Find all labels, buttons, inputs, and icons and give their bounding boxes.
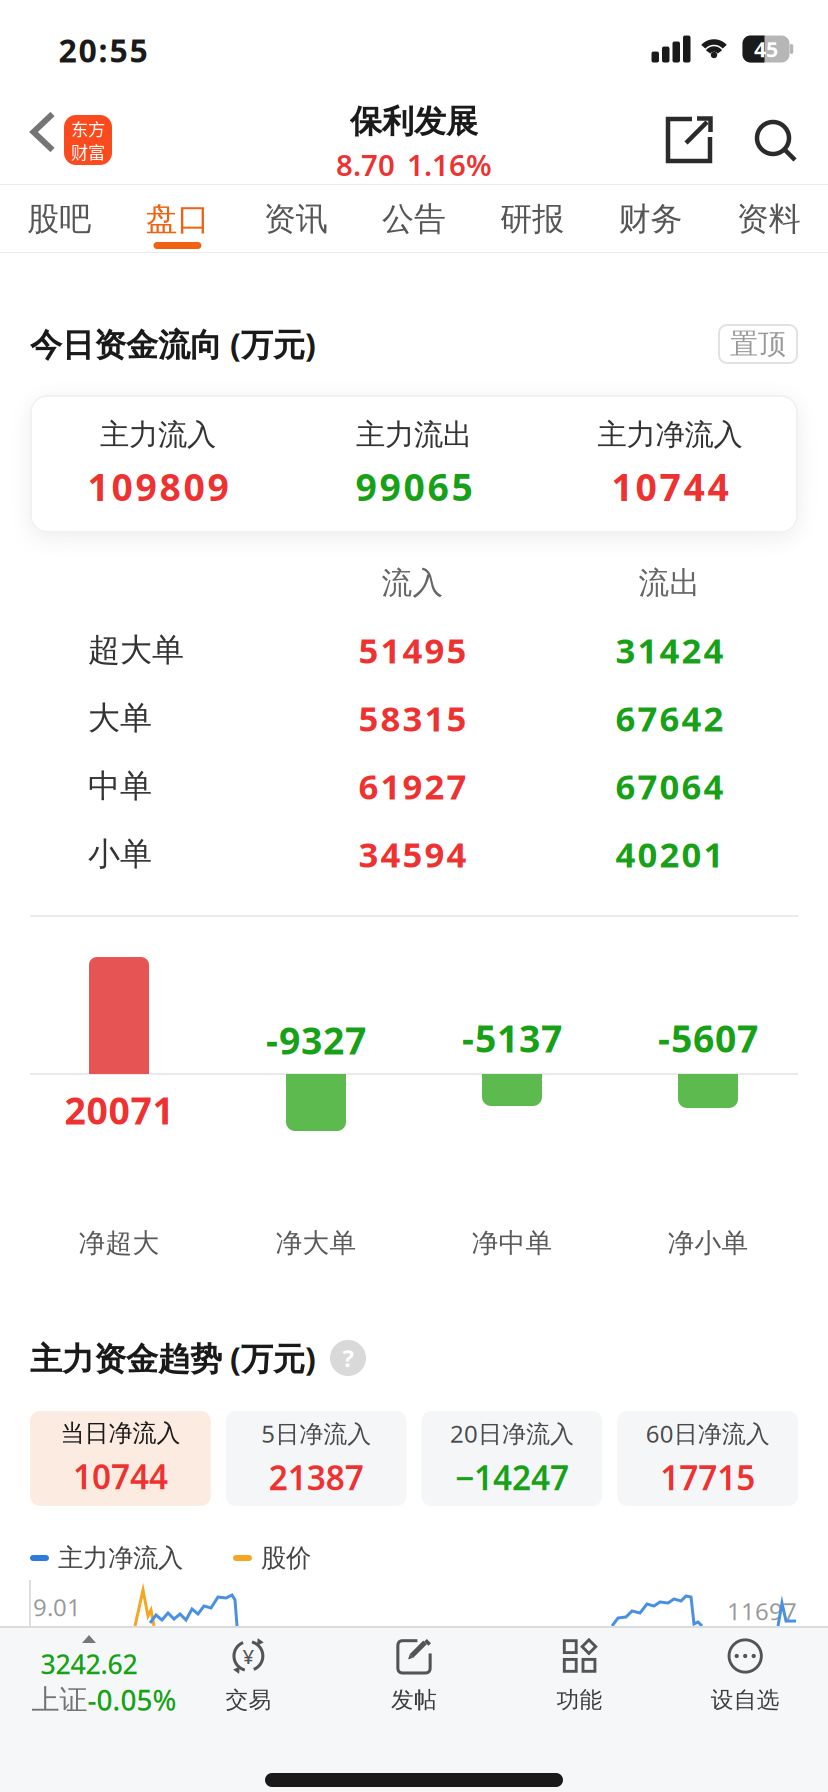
staticText: ? bbox=[342, 1342, 353, 1374]
staticText: 盘口 bbox=[145, 199, 209, 239]
staticText: 67064 bbox=[615, 763, 723, 809]
staticText: 34594 bbox=[358, 831, 466, 877]
button[interactable]: 20日净流入 bbox=[421, 1411, 602, 1506]
staticText: 51495 bbox=[358, 627, 466, 673]
button[interactable]: 资讯 bbox=[237, 185, 355, 252]
staticText: 上证 bbox=[31, 1683, 87, 1717]
staticText: 10744 bbox=[611, 462, 728, 511]
staticText: 公告 bbox=[382, 199, 446, 239]
button[interactable]: Search bbox=[745, 110, 805, 170]
button[interactable]: 财务 bbox=[591, 185, 710, 252]
staticText: 资料 bbox=[737, 199, 801, 239]
staticText: 主力资金趋势 (万元) bbox=[30, 1337, 316, 1379]
button[interactable]: Share bbox=[657, 108, 721, 172]
staticText: ¥ bbox=[241, 1640, 255, 1672]
button[interactable]: 功能 bbox=[497, 1634, 662, 1734]
staticText: 11697 bbox=[727, 1595, 797, 1627]
button[interactable]: 研报 bbox=[473, 185, 591, 252]
staticText: 流出 bbox=[638, 564, 700, 602]
staticText: 小单 bbox=[88, 834, 152, 874]
staticText: 1.16% bbox=[407, 145, 492, 184]
staticText: 净超大 bbox=[78, 1227, 159, 1259]
staticText: 财富 bbox=[71, 139, 105, 164]
staticText: 5日净流入 bbox=[261, 1417, 371, 1449]
staticText: 东方 bbox=[71, 116, 105, 141]
staticText: 31424 bbox=[615, 627, 723, 673]
staticText: 主力流入 bbox=[100, 417, 216, 453]
button[interactable]: 资料 bbox=[710, 185, 828, 252]
button[interactable]: 上证指数 bbox=[0, 1634, 166, 1734]
staticText: 8.70 bbox=[336, 145, 395, 184]
staticText: 60日净流入 bbox=[646, 1417, 770, 1449]
staticText: 净中单 bbox=[471, 1227, 552, 1259]
staticText: 功能 bbox=[557, 1686, 603, 1714]
staticText: 超大单 bbox=[88, 630, 184, 670]
staticText: -5137 bbox=[462, 1013, 562, 1063]
staticText: 财务 bbox=[619, 199, 683, 239]
button[interactable]: 东方财富 bbox=[64, 115, 112, 165]
button[interactable]: Back bbox=[17, 99, 68, 165]
button[interactable]: ¥ bbox=[166, 1634, 331, 1734]
staticText: 17715 bbox=[660, 1455, 755, 1500]
staticText: 9.01 bbox=[33, 1591, 81, 1623]
staticText: 设自选 bbox=[711, 1686, 780, 1714]
staticText: 主力流出 bbox=[356, 417, 472, 453]
staticText: -9327 bbox=[266, 1015, 366, 1065]
staticText: -0.05% bbox=[87, 1681, 176, 1719]
button[interactable]: 置顶 bbox=[718, 324, 798, 364]
staticText: 保利发展 bbox=[350, 102, 478, 141]
staticText: 3242.62 bbox=[40, 1646, 137, 1682]
staticText: 中单 bbox=[88, 766, 152, 806]
staticText: 置顶 bbox=[730, 327, 786, 361]
staticText: 资讯 bbox=[264, 199, 328, 239]
staticText: 发帖 bbox=[391, 1686, 437, 1714]
staticText: 20:55 bbox=[58, 29, 147, 71]
staticText: 净小单 bbox=[667, 1227, 748, 1259]
staticText: 股价 bbox=[261, 1542, 311, 1573]
staticText: 61927 bbox=[358, 763, 466, 809]
button[interactable]: 盘口 bbox=[118, 185, 237, 252]
staticText: −14247 bbox=[455, 1455, 569, 1500]
staticText: 99065 bbox=[355, 462, 472, 511]
staticText: 大单 bbox=[88, 698, 152, 738]
staticText: 净大单 bbox=[275, 1227, 356, 1259]
staticText: 67642 bbox=[615, 695, 723, 741]
button[interactable]: 股吧 bbox=[0, 185, 118, 252]
button[interactable]: 发帖 bbox=[331, 1634, 497, 1734]
staticText: 20071 bbox=[64, 1085, 173, 1135]
staticText: 10744 bbox=[73, 1454, 168, 1498]
staticText: 研报 bbox=[500, 199, 564, 239]
staticText: 45 bbox=[754, 35, 778, 63]
staticText: 流入 bbox=[381, 564, 443, 602]
button[interactable]: 公告 bbox=[355, 185, 473, 252]
staticText: 股吧 bbox=[27, 199, 91, 239]
staticText: 58315 bbox=[358, 695, 466, 741]
staticText: 40201 bbox=[615, 831, 723, 877]
staticText: 交易 bbox=[225, 1686, 271, 1714]
staticText: 当日净流入 bbox=[60, 1419, 180, 1448]
staticText: 20日净流入 bbox=[450, 1417, 574, 1449]
staticText: 主力净流入 bbox=[58, 1542, 183, 1573]
staticText: -5607 bbox=[658, 1013, 758, 1063]
staticText: 21387 bbox=[269, 1455, 364, 1500]
button[interactable]: 60日净流入 bbox=[617, 1411, 798, 1506]
button[interactable]: 设自选 bbox=[662, 1634, 828, 1734]
staticText: 109809 bbox=[87, 462, 228, 511]
staticText: 主力净流入 bbox=[597, 417, 742, 453]
staticText: 今日资金流向 (万元) bbox=[30, 323, 316, 365]
button[interactable]: 5日净流入 bbox=[226, 1411, 407, 1506]
button[interactable]: 当日净流入 bbox=[30, 1411, 211, 1506]
